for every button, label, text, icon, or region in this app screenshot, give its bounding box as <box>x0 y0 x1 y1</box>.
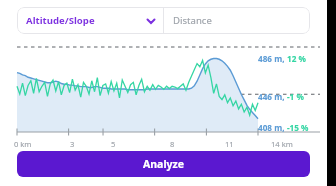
staticText: -1 % <box>287 91 304 102</box>
staticText: 8 <box>170 139 175 149</box>
staticText: -15 % <box>287 122 309 133</box>
staticText: 5 <box>111 139 116 149</box>
button[interactable]: Analyze <box>17 151 310 177</box>
staticText: 486 m, <box>258 53 287 64</box>
staticText: Analyze <box>143 157 184 171</box>
button[interactable]: Altitude/Slope <box>17 7 163 34</box>
staticText: 11 <box>225 139 234 149</box>
button[interactable]: Distance <box>164 7 310 34</box>
staticText: 14 km <box>271 139 293 149</box>
staticText: 408 m, <box>258 122 287 133</box>
other: Open metric menu <box>146 16 156 26</box>
staticText: 446 m, <box>258 91 287 102</box>
staticText: Altitude/Slope <box>26 14 95 27</box>
staticText: 12 % <box>287 53 306 64</box>
staticText: 0 km <box>14 139 32 149</box>
staticText: Distance <box>173 14 212 27</box>
staticText: 3 <box>70 139 75 149</box>
